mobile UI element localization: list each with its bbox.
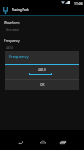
button[interactable]: Back: [10, 130, 31, 150]
staticText: Frequency: [9, 54, 29, 59]
button[interactable]: Home: [32, 130, 53, 150]
staticText: Frequency: [4, 39, 20, 43]
staticText: 440.0: [38, 68, 46, 72]
button[interactable]: OK: [5, 80, 79, 90]
button[interactable]: Frequency: [0, 39, 84, 55]
staticText: 11:06: [74, 1, 83, 6]
button[interactable]: Waveform: [0, 21, 84, 37]
staticText: Tuning Fork: [12, 8, 29, 12]
staticText: Sine wave: [6, 28, 20, 32]
staticText: Waveform: [4, 21, 20, 25]
staticText: OK: [40, 83, 45, 87]
button[interactable]: Recent apps: [53, 130, 74, 150]
staticText: 440.0: [6, 46, 14, 50]
